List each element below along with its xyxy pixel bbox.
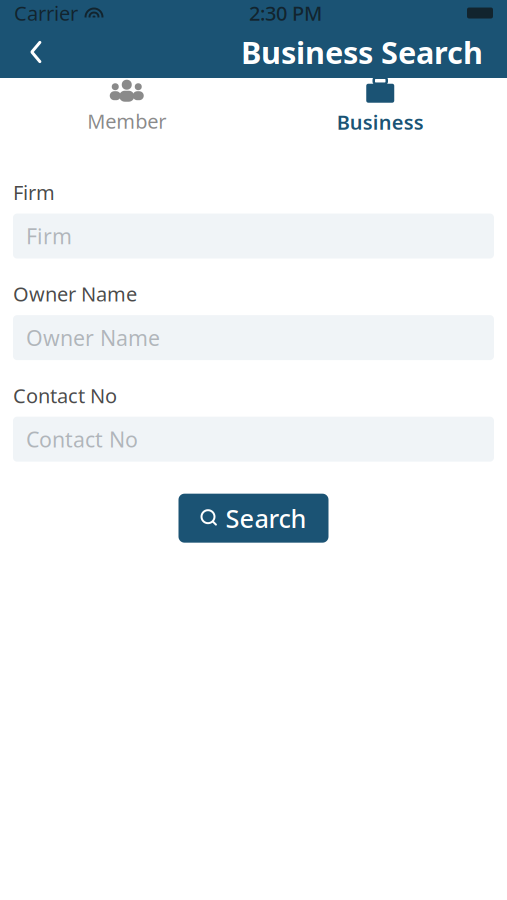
staticText: Owner Name bbox=[26, 323, 160, 352]
button[interactable]: Owner Name bbox=[13, 315, 494, 360]
button[interactable]: Firm bbox=[13, 214, 494, 259]
staticText: Owner Name bbox=[13, 281, 137, 307]
button[interactable]: Search bbox=[178, 494, 328, 543]
button[interactable]: Member bbox=[0, 78, 253, 139]
staticText: Contact No bbox=[26, 425, 138, 453]
staticText: Search bbox=[225, 501, 306, 535]
staticText: Business bbox=[337, 109, 424, 135]
button[interactable]: Contact No bbox=[13, 417, 494, 462]
staticText: Firm bbox=[26, 222, 72, 250]
staticText: Member bbox=[87, 108, 166, 134]
staticText: Firm bbox=[13, 179, 55, 206]
staticText: Contact No bbox=[13, 382, 117, 409]
staticText: 2:30 PM bbox=[249, 0, 322, 26]
button[interactable]: Back bbox=[14, 30, 58, 74]
staticText: Business Search bbox=[241, 32, 483, 72]
staticText: Carrier bbox=[14, 0, 78, 26]
button[interactable]: Business bbox=[253, 78, 507, 139]
